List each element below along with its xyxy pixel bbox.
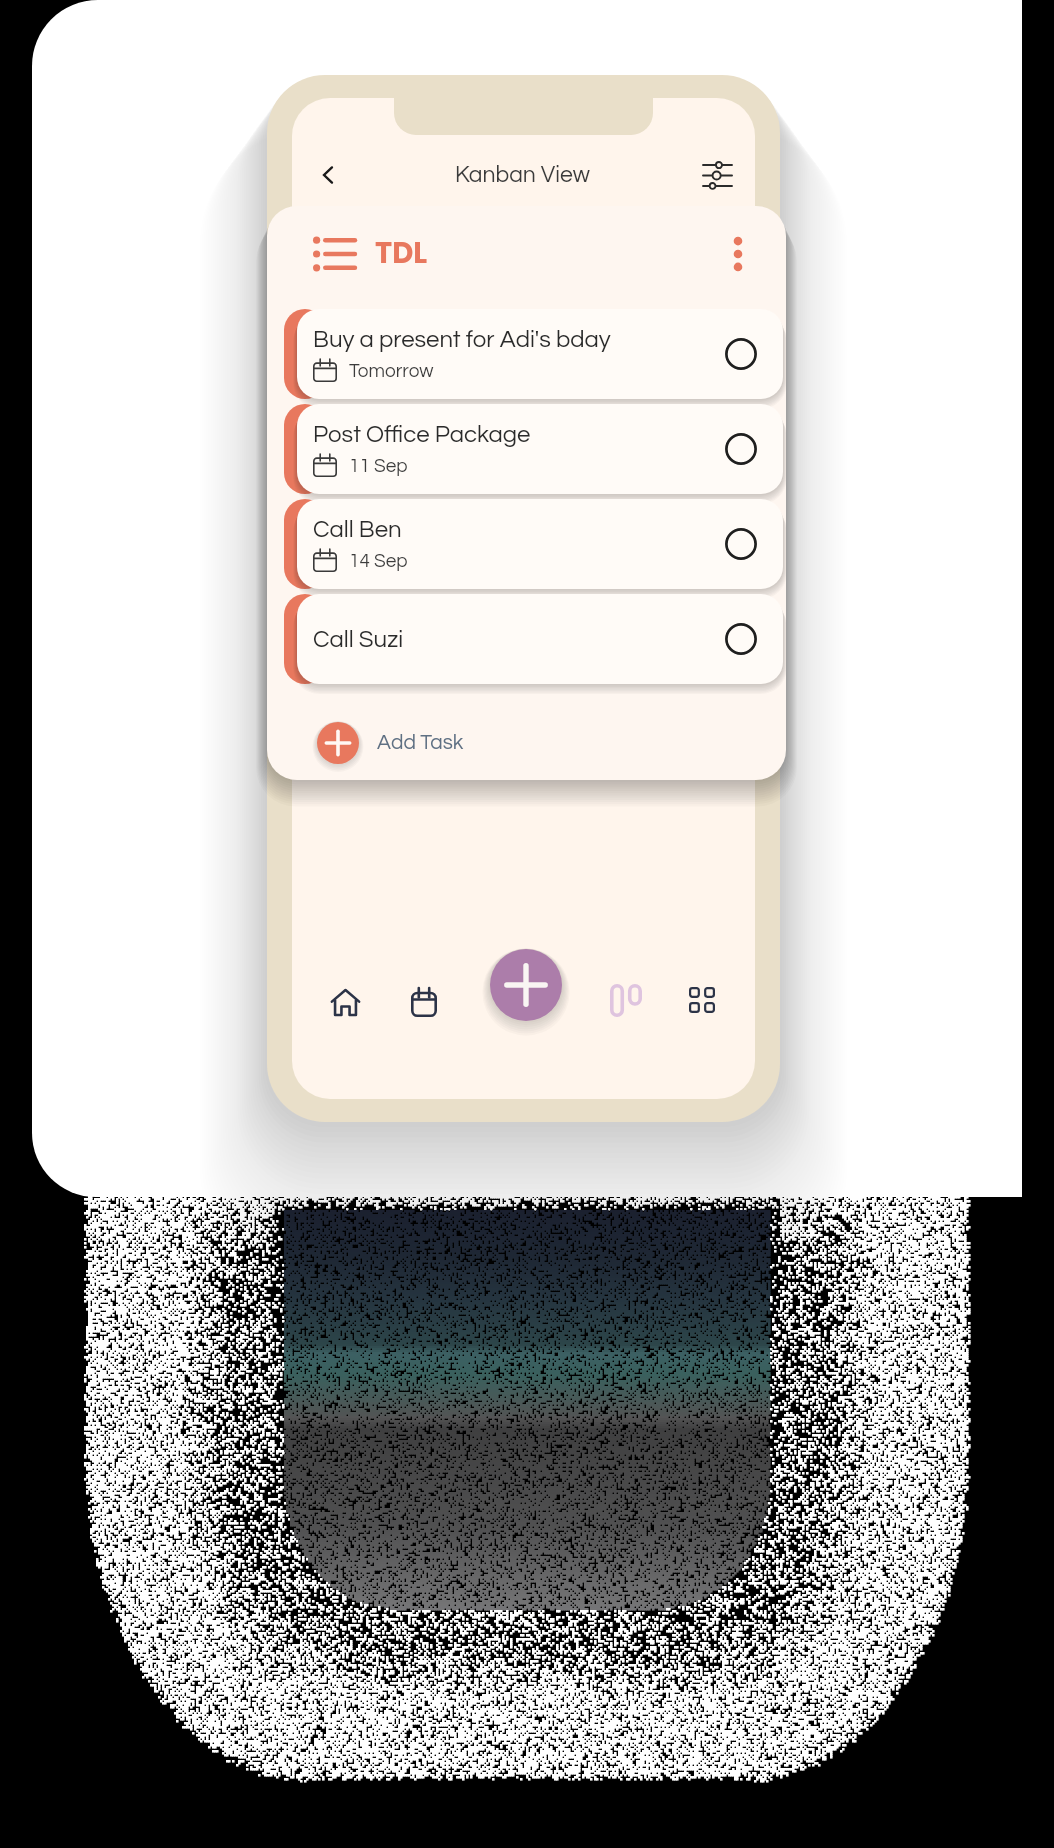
- button[interactable]: Post Office Package: [284, 404, 770, 494]
- button[interactable]: Home: [318, 975, 372, 1029]
- staticText: 14 Sep: [349, 551, 408, 571]
- staticText: TDL: [375, 233, 428, 274]
- button[interactable]: Add Task: [317, 722, 464, 764]
- staticText: Add Task: [377, 732, 464, 754]
- staticText: Tomorrow: [349, 361, 434, 381]
- button[interactable]: Complete Call Ben: [721, 524, 761, 564]
- button[interactable]: More options: [716, 232, 760, 276]
- button[interactable]: TDL: [313, 233, 428, 274]
- staticText: 11 Sep: [349, 456, 408, 476]
- button[interactable]: Call Suzi: [284, 594, 770, 684]
- button[interactable]: Call Ben: [284, 499, 770, 589]
- button[interactable]: Complete Buy a present for Adi's bday: [721, 334, 761, 374]
- staticText: Kanban View: [455, 163, 590, 187]
- button[interactable]: Back: [304, 152, 352, 198]
- button[interactable]: Buy a present for Adi's bday: [284, 309, 770, 399]
- button[interactable]: Filter settings: [693, 152, 741, 198]
- button[interactable]: Complete Call Suzi: [721, 619, 761, 659]
- staticText: Call Ben: [313, 517, 402, 542]
- staticText: Call Suzi: [313, 627, 404, 652]
- staticText: Buy a present for Adi's bday: [313, 327, 611, 352]
- staticText: Post Office Package: [313, 422, 531, 447]
- button[interactable]: Calendar: [397, 975, 451, 1029]
- button[interactable]: Grid: [675, 973, 729, 1027]
- button[interactable]: Add: [490, 949, 562, 1021]
- button[interactable]: Complete Post Office Package: [721, 429, 761, 469]
- button[interactable]: Board: [599, 973, 653, 1027]
